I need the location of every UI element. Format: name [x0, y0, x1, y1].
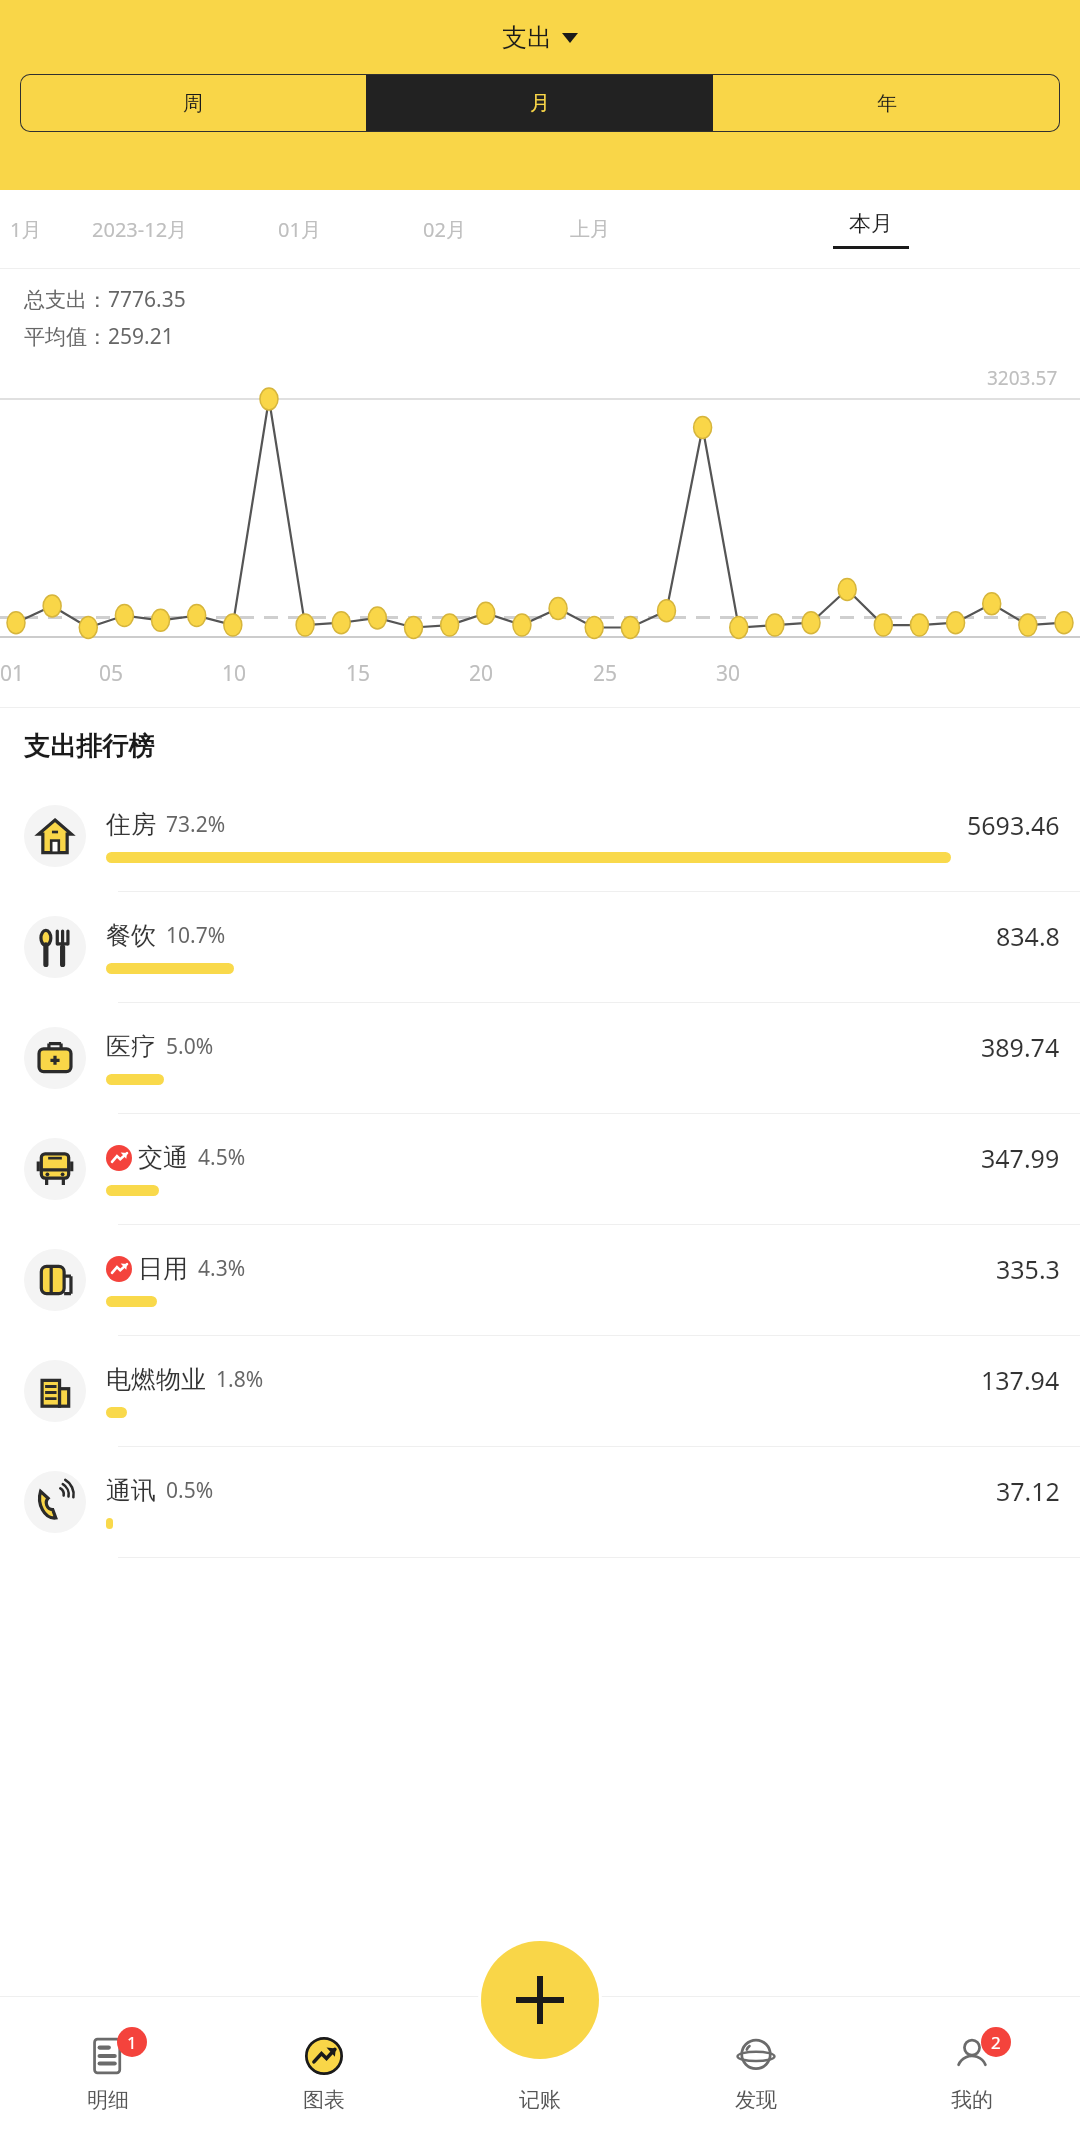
- button[interactable]: 电燃物业: [0, 1336, 1080, 1447]
- staticText: 25: [593, 659, 618, 688]
- staticText: 上月: [570, 217, 610, 242]
- staticText: 10: [222, 659, 247, 688]
- button[interactable]: 日用: [0, 1225, 1080, 1336]
- staticText: 137.94: [981, 1363, 1060, 1397]
- staticText: 73.2%: [166, 810, 226, 839]
- button[interactable]: 1月: [0, 190, 52, 268]
- staticText: 4.5%: [198, 1143, 246, 1172]
- button[interactable]: 记账: [481, 1941, 599, 2059]
- staticText: 通讯: [106, 1475, 156, 1506]
- staticText: 支出排行榜: [24, 730, 154, 763]
- staticText: 347.99: [981, 1141, 1060, 1175]
- staticText: 1.8%: [216, 1365, 264, 1394]
- button[interactable]: 01月: [227, 190, 372, 268]
- staticText: 02月: [423, 216, 466, 243]
- staticText: 05: [99, 659, 124, 688]
- staticText: 2: [991, 2031, 1001, 2054]
- staticText: 日用: [138, 1253, 188, 1284]
- staticText: 交通: [138, 1142, 188, 1173]
- staticText: 335.3: [996, 1252, 1060, 1286]
- button[interactable]: 1: [0, 1997, 216, 2144]
- button[interactable]: 交通: [0, 1114, 1080, 1225]
- button[interactable]: 餐饮: [0, 892, 1080, 1003]
- staticText: 支出: [502, 22, 552, 53]
- button[interactable]: 记账: [432, 1997, 648, 2144]
- staticText: 平均值：259.21: [24, 322, 174, 351]
- staticText: 20: [469, 659, 494, 688]
- button[interactable]: 02月: [372, 190, 517, 268]
- staticText: 电燃物业: [106, 1364, 206, 1395]
- staticText: 餐饮: [106, 920, 156, 951]
- button[interactable]: 图表: [216, 1997, 432, 2144]
- staticText: 住房: [106, 809, 156, 840]
- staticText: 389.74: [981, 1030, 1060, 1064]
- staticText: 发现: [735, 2087, 777, 2113]
- staticText: 30: [716, 659, 741, 688]
- staticText: 医疗: [106, 1031, 156, 1062]
- button[interactable]: 支出: [494, 18, 586, 57]
- staticText: 37.12: [996, 1474, 1060, 1508]
- button[interactable]: 年: [713, 74, 1060, 132]
- staticText: 年: [877, 91, 897, 116]
- staticText: 我的: [951, 2087, 993, 2113]
- button[interactable]: 通讯: [0, 1447, 1080, 1558]
- button[interactable]: 2023-12月: [52, 190, 227, 268]
- staticText: 图表: [303, 2087, 345, 2113]
- staticText: 10.7%: [166, 921, 226, 950]
- staticText: 5.0%: [166, 1032, 214, 1061]
- staticText: 15: [346, 659, 371, 688]
- button[interactable]: 2: [864, 1997, 1080, 2144]
- staticText: 834.8: [996, 919, 1060, 953]
- staticText: 周: [183, 91, 203, 116]
- staticText: 本月: [849, 210, 893, 238]
- staticText: 明细: [87, 2087, 129, 2113]
- staticText: 0.5%: [166, 1476, 214, 1505]
- staticText: 月: [530, 91, 550, 116]
- button[interactable]: 发现: [648, 1997, 864, 2144]
- button[interactable]: 上月: [517, 190, 662, 268]
- staticText: 01: [0, 659, 25, 688]
- staticText: 2023-12月: [92, 216, 188, 243]
- staticText: 01月: [278, 216, 321, 243]
- staticText: 5693.46: [967, 808, 1060, 842]
- button[interactable]: 月: [366, 74, 713, 132]
- staticText: 记账: [519, 2087, 561, 2113]
- staticText: 1: [127, 2031, 137, 2054]
- staticText: 1月: [10, 216, 42, 243]
- button[interactable]: 本月: [662, 190, 1080, 268]
- staticText: 3203.57: [987, 365, 1058, 391]
- staticText: 总支出：7776.35: [24, 285, 186, 314]
- button[interactable]: 医疗: [0, 1003, 1080, 1114]
- staticText: 4.3%: [198, 1254, 246, 1283]
- button[interactable]: 周: [20, 74, 366, 132]
- button[interactable]: 住房: [0, 781, 1080, 892]
